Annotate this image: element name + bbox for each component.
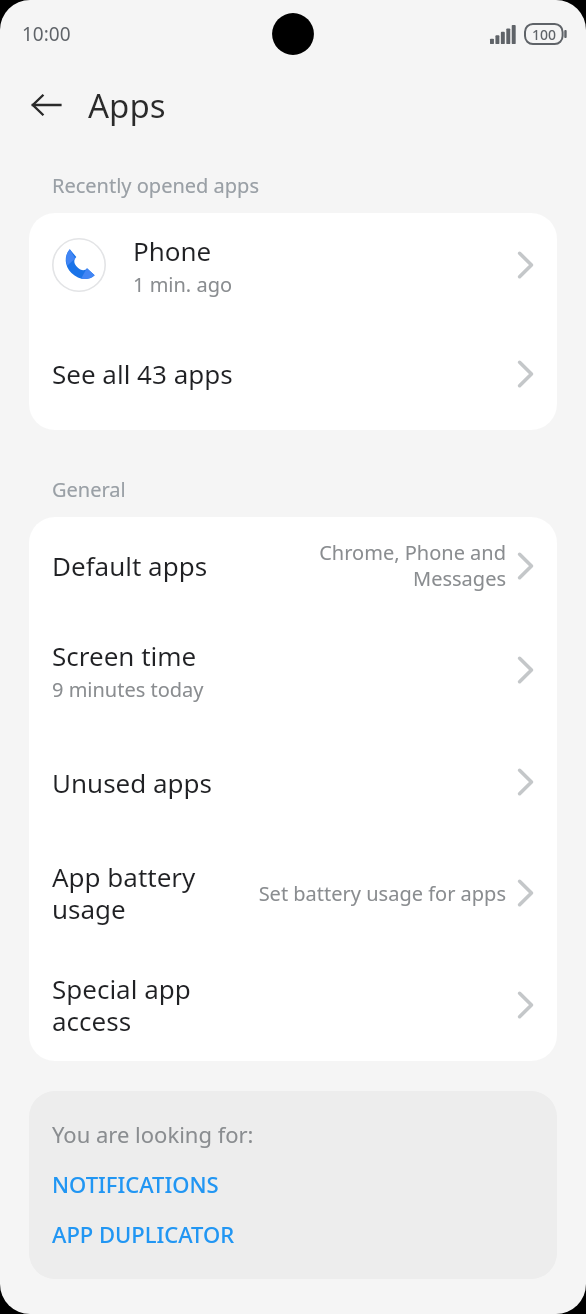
staticText: App battery usage <box>52 859 242 927</box>
button[interactable]: APP DUPLICATOR <box>52 1219 235 1249</box>
button[interactable]: App battery usage <box>29 838 557 948</box>
staticText: 9 minutes today <box>52 676 204 703</box>
staticText: Phone <box>133 233 212 268</box>
staticText: Set battery usage for apps <box>258 880 506 907</box>
button[interactable]: Default apps <box>29 517 557 614</box>
staticText: Screen time <box>52 638 197 673</box>
staticText: See all 43 apps <box>52 356 516 391</box>
button[interactable]: Back <box>20 79 72 131</box>
staticText: Apps <box>88 83 166 128</box>
button[interactable]: Unused apps <box>29 726 557 838</box>
staticText: Unused apps <box>52 765 213 800</box>
staticText: Special app access <box>52 971 242 1039</box>
staticText: Recently opened apps <box>52 172 259 199</box>
button[interactable]: Special app access <box>29 948 557 1061</box>
staticText: 100 <box>532 25 557 44</box>
button[interactable]: Phone <box>29 213 557 317</box>
staticText: General <box>52 476 126 503</box>
staticText: Chrome, Phone and Messages <box>254 539 506 592</box>
staticText: You are looking for: <box>52 1119 254 1149</box>
button[interactable]: See all 43 apps <box>29 317 557 430</box>
staticText: 1 min. ago <box>133 271 233 298</box>
staticText: 10:00 <box>22 21 71 47</box>
staticText: Default apps <box>52 548 208 583</box>
button[interactable]: NOTIFICATIONS <box>52 1169 219 1199</box>
button[interactable]: Screen time <box>29 614 557 726</box>
